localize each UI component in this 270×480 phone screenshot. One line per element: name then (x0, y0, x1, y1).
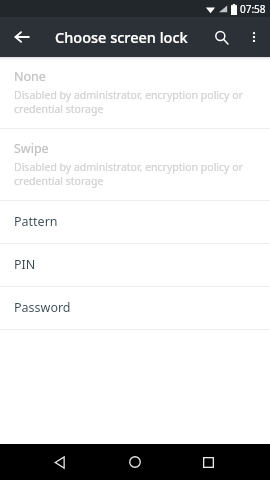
staticText: Choose screen lock (55, 27, 188, 47)
staticText: Pattern (14, 213, 58, 230)
button[interactable]: Search (204, 20, 238, 54)
button[interactable]: More options (238, 21, 270, 53)
staticText: Disabled by administrator, encryption po… (14, 88, 254, 116)
staticText: Swipe (14, 140, 49, 157)
button[interactable]: Recent apps (194, 448, 222, 476)
button[interactable]: Pattern (0, 201, 270, 243)
button[interactable]: Back (7, 22, 37, 52)
button[interactable]: Password (0, 287, 270, 329)
staticText: 07:58 (240, 2, 266, 16)
staticText: PIN (14, 256, 36, 273)
staticText: Password (14, 299, 71, 316)
button[interactable]: PIN (0, 244, 270, 286)
button[interactable]: None (0, 57, 270, 128)
button[interactable]: Back (46, 448, 74, 476)
button[interactable]: Swipe (0, 129, 270, 200)
staticText: Disabled by administrator, encryption po… (14, 160, 254, 188)
staticText: None (14, 68, 46, 85)
button[interactable]: Home (121, 448, 149, 476)
